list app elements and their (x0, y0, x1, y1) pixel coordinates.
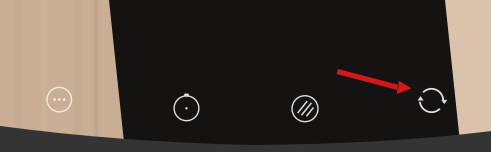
button[interactable]: Timer (166, 88, 206, 128)
button[interactable]: More camera options (39, 80, 79, 120)
button[interactable]: Flip camera (411, 80, 451, 120)
button[interactable]: Filters (285, 89, 325, 129)
